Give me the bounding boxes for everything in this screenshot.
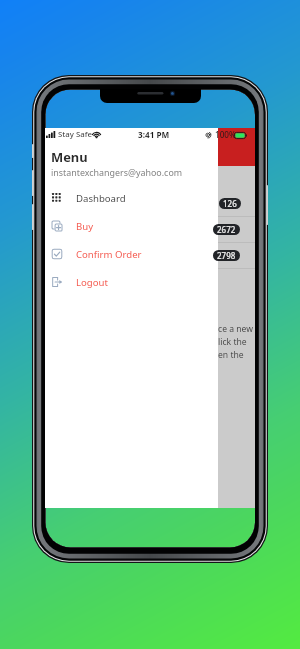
staticText: Buy <box>76 220 94 233</box>
button[interactable]: Confirm Order <box>45 240 218 268</box>
staticText: en the <box>218 349 244 361</box>
staticText: 2672 <box>217 224 236 235</box>
staticText: Stay Safe <box>58 129 92 140</box>
button[interactable]: Buy <box>45 212 218 240</box>
button[interactable]: Logout <box>45 268 218 296</box>
button[interactable]: Dashboard <box>45 184 218 212</box>
staticText: 100% <box>215 129 237 140</box>
staticText: Menu <box>51 148 88 166</box>
staticText: Dashboard <box>76 192 126 205</box>
staticText: Confirm Order <box>76 248 142 261</box>
staticText: 126 <box>223 198 237 209</box>
staticText: instantexchangers@yahoo.com <box>51 166 183 178</box>
staticText: lick the <box>218 336 247 348</box>
staticText: ce a new <box>218 323 254 335</box>
staticText: 2798 <box>217 250 236 261</box>
staticText: Logout <box>76 276 108 289</box>
staticText: 3:41 PM <box>138 129 170 140</box>
